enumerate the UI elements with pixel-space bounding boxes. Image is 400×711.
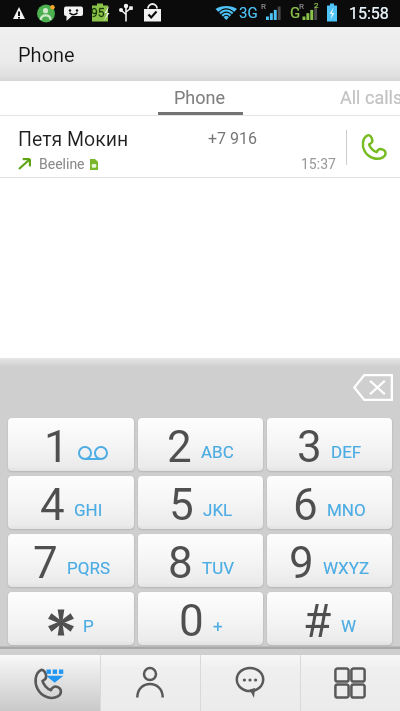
staticText: W (341, 616, 357, 636)
staticText: P (83, 616, 94, 636)
staticText: 3 (297, 421, 322, 471)
button[interactable]: 2 (138, 418, 263, 471)
button[interactable]: Call (347, 116, 400, 178)
staticText: 0 (179, 595, 204, 645)
button[interactable]: Phone (154, 81, 246, 116)
button[interactable]: Петя Мокин (0, 116, 400, 178)
staticText: MNO (327, 500, 366, 520)
button[interactable]: 0 (138, 592, 263, 645)
staticText: WXYZ (323, 558, 370, 578)
staticText: +7 916 (208, 129, 258, 148)
button[interactable]: 1 (8, 418, 134, 471)
button[interactable]: 5 (138, 476, 263, 529)
staticText: 6 (293, 479, 318, 529)
button[interactable]: 4 (8, 476, 134, 529)
button[interactable]: 6 (267, 476, 392, 529)
staticText: Петя Мокин (18, 128, 129, 151)
staticText: 9 (289, 537, 314, 587)
button[interactable]: # (267, 592, 392, 645)
staticText: JKL (203, 500, 233, 520)
staticText: 95 (91, 6, 105, 20)
staticText: 4 (40, 479, 65, 529)
button[interactable]: P (8, 592, 134, 645)
staticText: 5 (169, 479, 194, 529)
staticText: PQRS (67, 558, 110, 578)
button[interactable]: Dialer (0, 655, 100, 711)
staticText: 15:37 (301, 156, 336, 172)
button[interactable]: All calls (337, 81, 400, 116)
staticText: TUV (202, 558, 234, 578)
staticText: All calls (340, 87, 400, 108)
staticText: 3G (239, 4, 258, 22)
button[interactable]: 7 (8, 534, 134, 587)
button[interactable]: Apps (300, 655, 400, 711)
staticText: R (261, 2, 266, 11)
button[interactable]: 8 (138, 534, 263, 587)
staticText: R (299, 2, 304, 11)
staticText: DEF (331, 442, 362, 462)
staticText: 8 (168, 537, 193, 587)
staticText: 2 (167, 421, 192, 471)
staticText: Phone (174, 87, 226, 108)
staticText: GHI (74, 500, 103, 520)
staticText: 1 (44, 421, 69, 471)
staticText: Beeline (39, 156, 85, 172)
staticText: 7 (33, 537, 58, 587)
staticText: + (213, 616, 223, 636)
staticText: 2 (314, 1, 319, 10)
staticText: ABC (201, 442, 234, 462)
staticText: G (290, 4, 301, 22)
staticText: Phone (18, 43, 75, 66)
button[interactable]: Contacts (100, 655, 200, 711)
button[interactable]: 9 (267, 534, 392, 587)
button[interactable]: 3 (267, 418, 392, 471)
staticText: 15:58 (349, 4, 389, 23)
staticText: # (303, 594, 332, 645)
button[interactable]: Messages (200, 655, 300, 711)
button[interactable]: Backspace (350, 372, 394, 402)
